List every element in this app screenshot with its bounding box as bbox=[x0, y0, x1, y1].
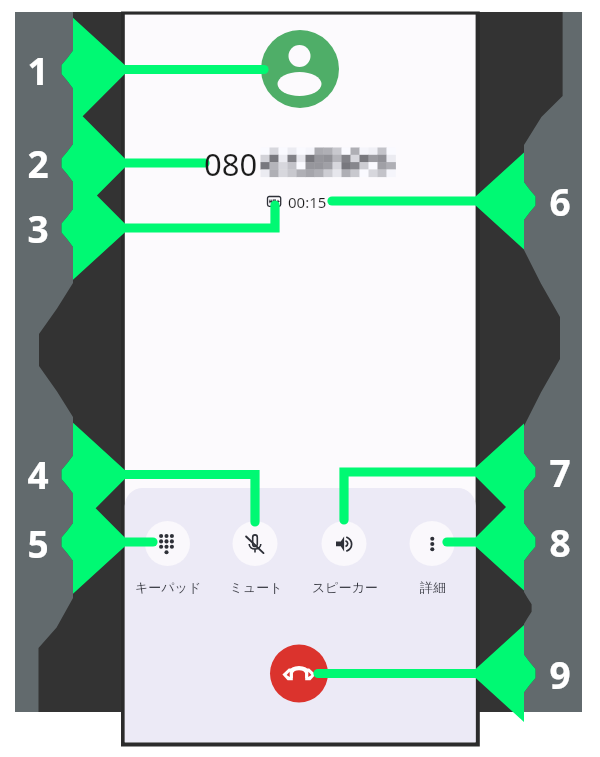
button[interactable]: 通話を終了 bbox=[270, 645, 328, 703]
staticText: 080 bbox=[204, 143, 258, 185]
staticText: キーパッド bbox=[124, 579, 212, 595]
staticText: ミュート bbox=[212, 579, 300, 595]
button[interactable]: ミュート bbox=[212, 511, 300, 596]
staticText: 00:15 bbox=[288, 192, 327, 212]
staticText: 1 bbox=[13, 45, 63, 95]
staticText: 5 bbox=[13, 518, 63, 568]
button[interactable]: スピーカー bbox=[301, 511, 389, 596]
staticText: 9 bbox=[535, 649, 585, 699]
staticText: 4 bbox=[13, 449, 63, 499]
staticText: スピーカー bbox=[301, 579, 389, 595]
staticText: 詳細 bbox=[389, 579, 477, 595]
staticText: 3 bbox=[13, 203, 63, 253]
button[interactable]: キーパッド bbox=[124, 511, 212, 596]
staticText: 6 bbox=[535, 176, 585, 226]
staticText: 2 bbox=[13, 138, 63, 188]
staticText: 8 bbox=[535, 517, 585, 567]
button[interactable]: 詳細 bbox=[389, 511, 477, 596]
staticText: 7 bbox=[535, 447, 585, 497]
